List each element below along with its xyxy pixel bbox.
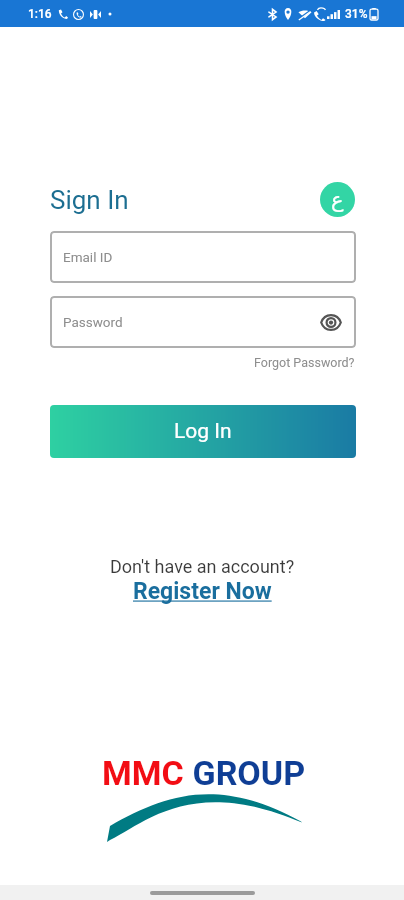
button[interactable]: Show password <box>315 306 347 338</box>
button[interactable]: Register Now <box>133 578 272 605</box>
button[interactable]: Email ID <box>50 231 356 283</box>
staticText: Don't have an account? <box>110 556 295 577</box>
staticText: 31% <box>345 7 368 21</box>
button[interactable]: Password <box>50 296 356 348</box>
staticText: MMC <box>102 753 184 793</box>
button[interactable]: Switch language to Arabic <box>320 182 355 217</box>
button[interactable]: Log In <box>50 405 356 458</box>
staticText: GROUP <box>184 753 306 793</box>
staticText: Sign In <box>50 185 129 215</box>
staticText: 1:16 <box>28 7 52 21</box>
staticText: Log In <box>174 419 232 444</box>
staticText: ع <box>331 188 344 212</box>
staticText: Password <box>63 314 123 330</box>
staticText: Email ID <box>63 249 113 265</box>
button[interactable]: Forgot Password? <box>254 355 355 370</box>
